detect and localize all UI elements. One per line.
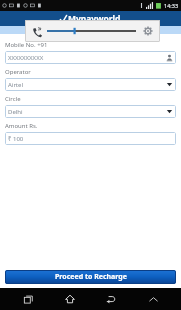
button[interactable]: Amount xyxy=(5,132,176,145)
staticText: Mobile No. +91 xyxy=(5,41,48,49)
staticText: Airtel xyxy=(8,81,166,89)
button[interactable]: Recents xyxy=(14,288,42,310)
staticText: ₹ 100 xyxy=(8,135,173,143)
button[interactable]: Back xyxy=(97,288,125,310)
staticText: Proceed to Recharge xyxy=(55,272,127,282)
button[interactable]: Sound settings xyxy=(141,24,155,38)
staticText: Amount Rs. xyxy=(5,122,38,130)
button[interactable]: Proceed to Recharge xyxy=(5,270,176,284)
button[interactable]: Call volume xyxy=(30,25,43,38)
button[interactable]: Select operator xyxy=(5,78,176,91)
button[interactable]: Pick contact xyxy=(5,51,176,64)
staticText: 14:33 xyxy=(164,2,179,9)
staticText: Operator xyxy=(5,68,31,76)
staticText: Delhi xyxy=(8,108,166,116)
button[interactable]: Volume slider xyxy=(47,25,136,37)
button[interactable]: Expand xyxy=(139,288,167,310)
button[interactable]: Home xyxy=(56,288,84,310)
staticText: Circle xyxy=(5,95,21,103)
staticText: XXXXXXXXXX xyxy=(8,54,166,62)
staticText: Mypayworld xyxy=(68,13,121,25)
button[interactable]: Select circle xyxy=(5,105,176,118)
